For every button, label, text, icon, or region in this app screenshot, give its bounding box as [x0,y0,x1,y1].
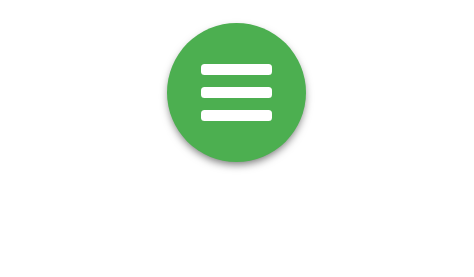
button[interactable]: Open menu [167,23,306,162]
